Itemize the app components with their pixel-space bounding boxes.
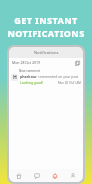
- staticText: Mon 28 Oct 2019: [12, 60, 41, 65]
- staticText: New comment: [19, 69, 40, 73]
- staticText: H: [13, 74, 17, 81]
- staticText: Notifications: [34, 50, 59, 55]
- button[interactable]: Home: [11, 169, 27, 182]
- staticText: commented on your post: [38, 74, 79, 79]
- button[interactable]: Profile: [65, 169, 81, 182]
- staticText: pharbour: [20, 74, 37, 79]
- button[interactable]: Settings: [74, 60, 80, 66]
- button[interactable]: New comment: [9, 67, 83, 87]
- staticText: Looking good!: [20, 80, 44, 85]
- staticText: GET INSTANT: [0, 14, 92, 26]
- button[interactable]: Notifications: [47, 169, 63, 182]
- staticText: NOTIFICATIONS: [0, 27, 92, 39]
- staticText: Mon 28 10:41 AM: [58, 81, 81, 85]
- button[interactable]: Messages: [29, 169, 45, 182]
